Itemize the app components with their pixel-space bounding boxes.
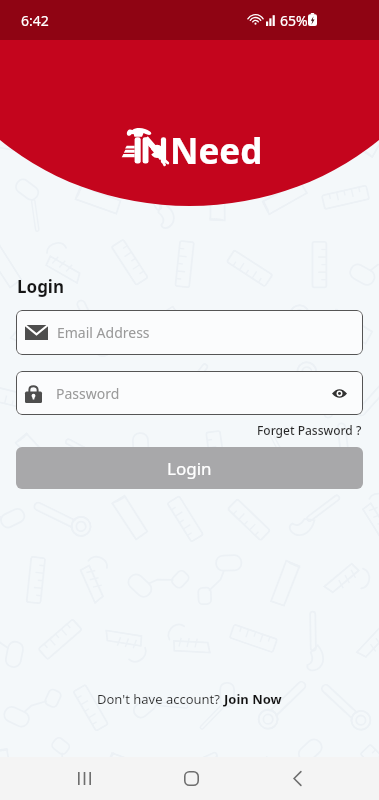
staticText: Password: [56, 384, 120, 403]
staticText: Need: [170, 127, 263, 175]
staticText: 65%: [280, 11, 308, 30]
button[interactable]: Login: [16, 447, 363, 489]
button[interactable]: Back: [270, 757, 325, 800]
staticText: Don't have account?: [97, 690, 224, 708]
staticText: Login: [167, 457, 212, 480]
button[interactable]: Email Address: [16, 310, 363, 355]
button[interactable]: Forget Password ?: [256, 422, 363, 438]
button[interactable]: Password: [16, 371, 363, 415]
staticText: Email Address: [57, 323, 150, 342]
button[interactable]: Home: [164, 757, 219, 800]
button[interactable]: Recents: [57, 757, 112, 800]
button[interactable]: Show password: [327, 381, 351, 405]
staticText: Login: [17, 275, 65, 298]
staticText: 6:42: [21, 11, 49, 30]
button[interactable]: Join Now: [224, 690, 282, 708]
